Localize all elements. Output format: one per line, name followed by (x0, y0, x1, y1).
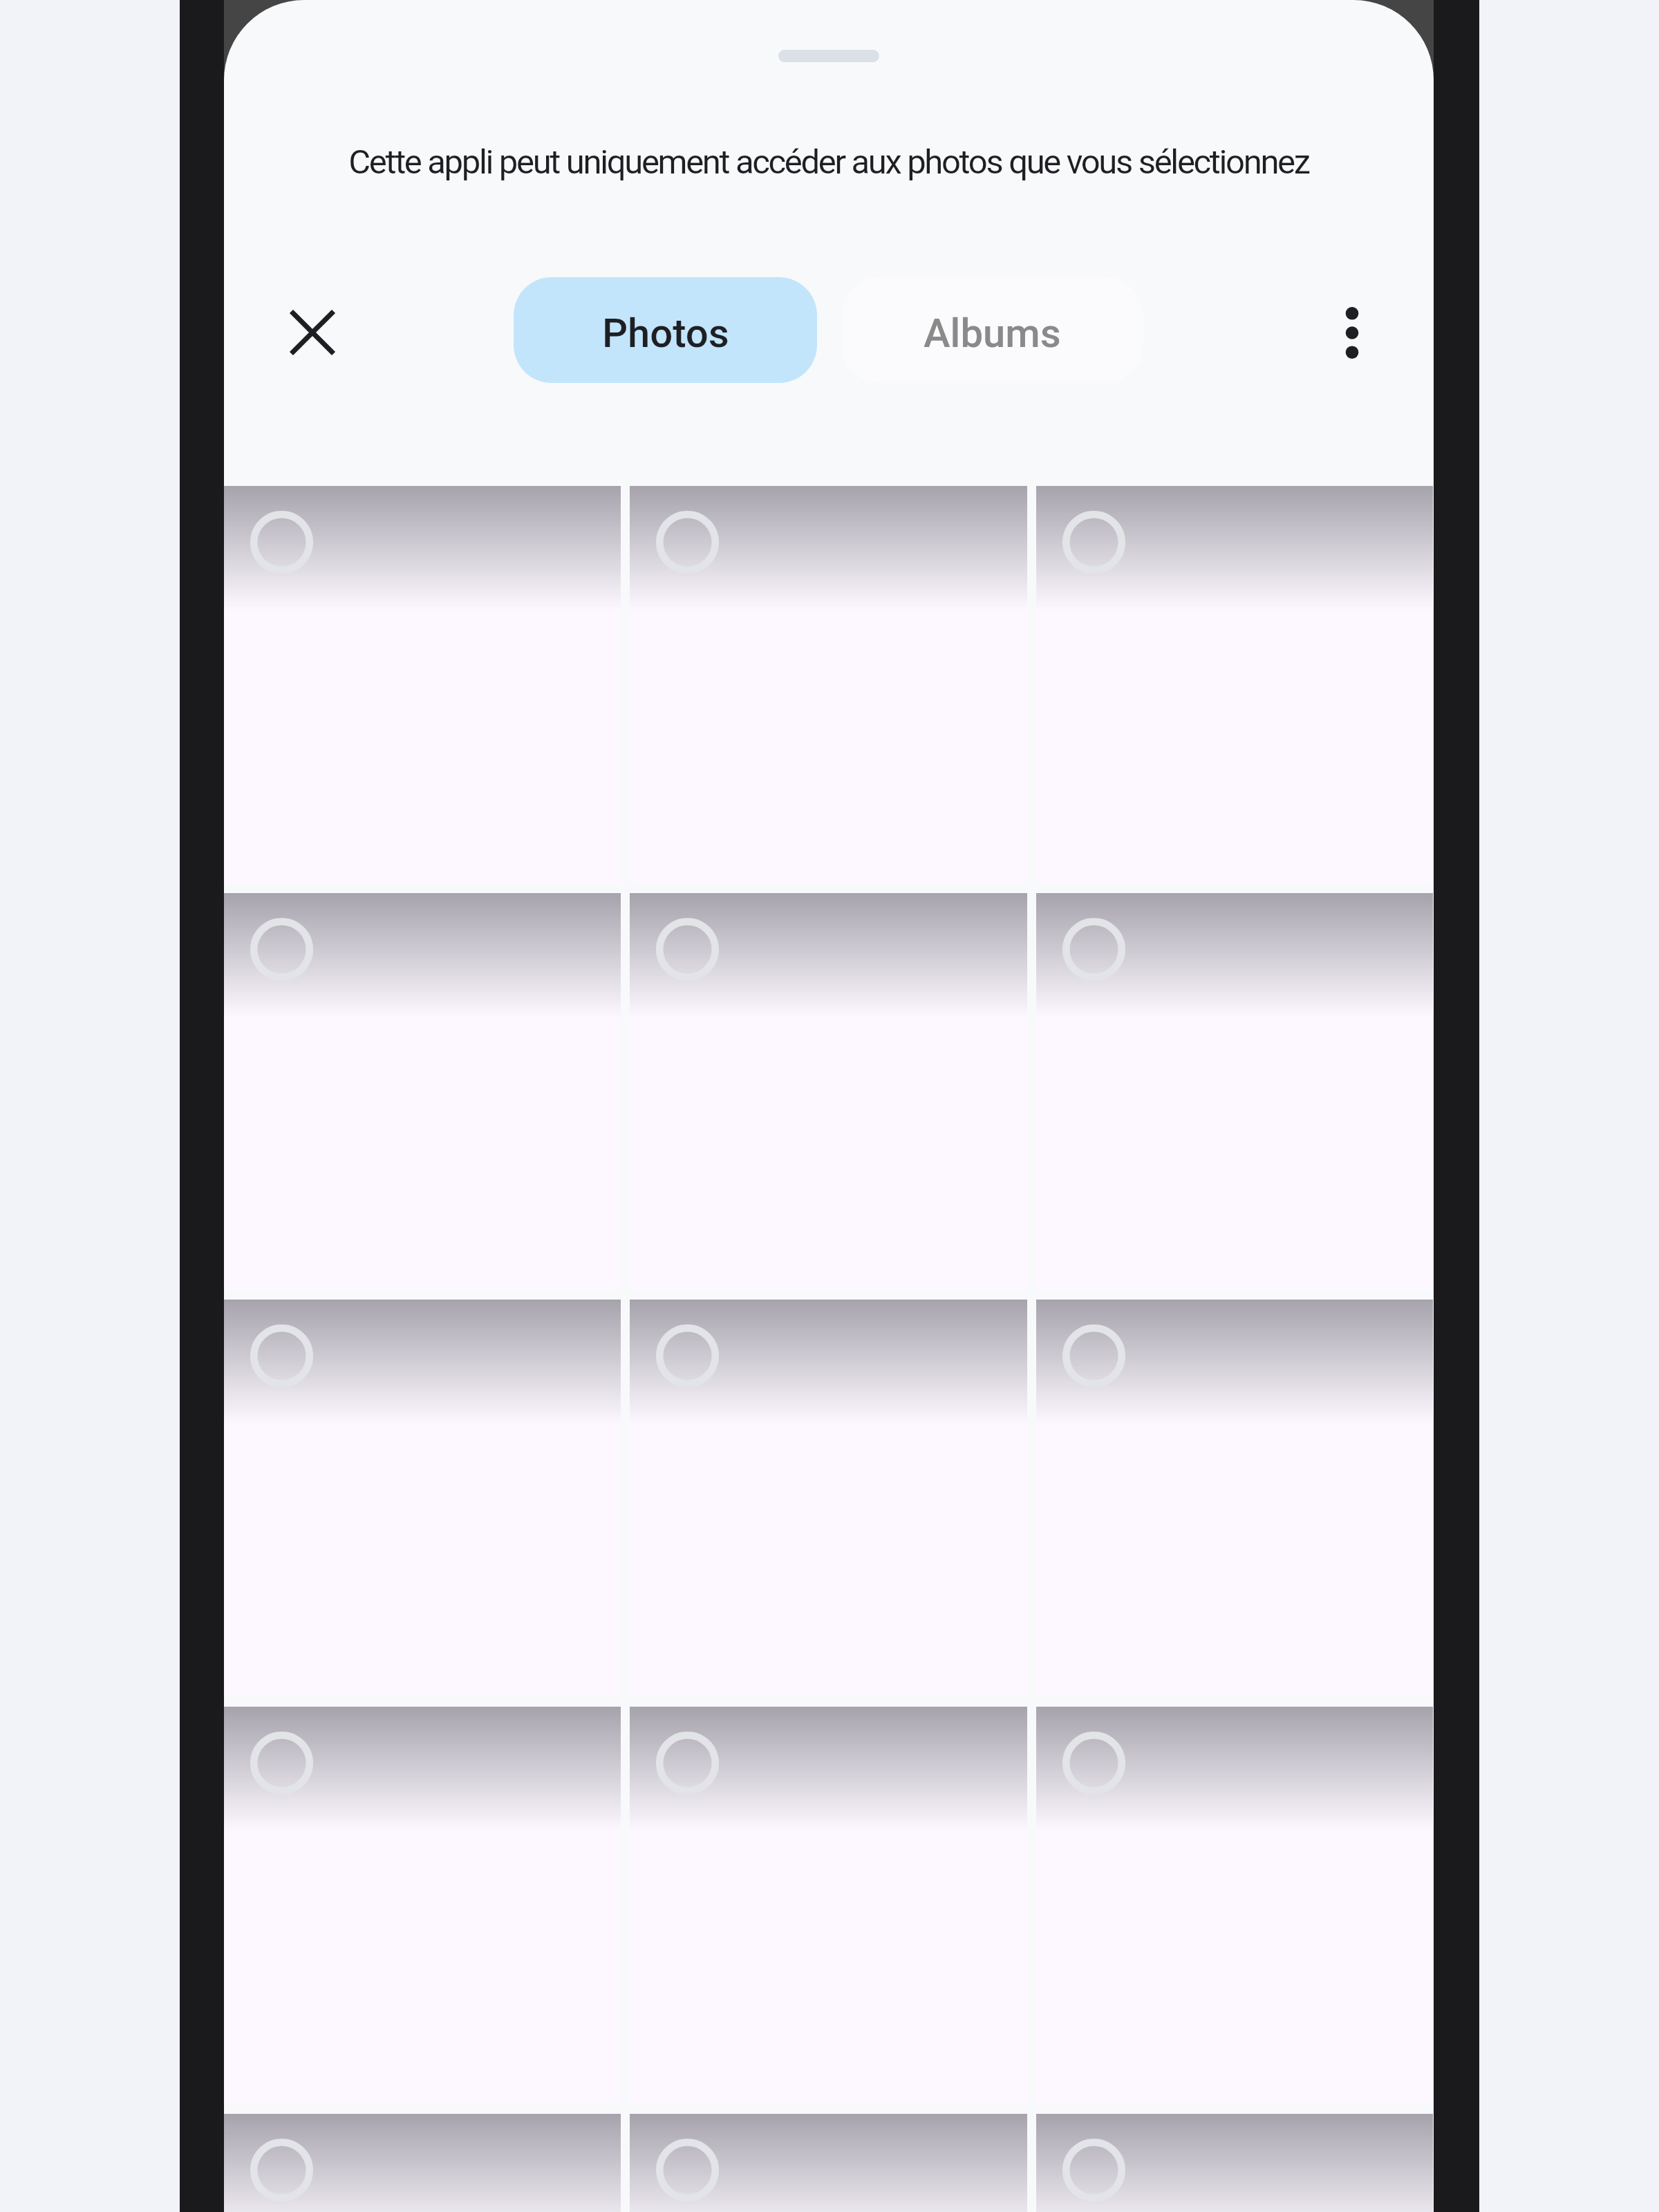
button[interactable]: Photo (224, 1300, 621, 1696)
button[interactable]: Photo (1036, 1300, 1433, 1696)
button[interactable]: Albums (841, 277, 1143, 383)
button[interactable]: Photo (630, 893, 1027, 1290)
button[interactable]: Photo (1036, 1707, 1433, 2103)
button[interactable]: More options (1313, 294, 1391, 371)
button[interactable]: Photo (224, 486, 621, 883)
button[interactable]: Photos (514, 277, 817, 383)
button[interactable]: Photo (1036, 486, 1433, 883)
button[interactable]: Photo (1036, 2114, 1433, 2212)
button[interactable]: Photo (630, 486, 1027, 883)
button[interactable]: Close (274, 294, 351, 371)
button[interactable]: Photo (1036, 893, 1433, 1290)
button[interactable]: Photo (224, 893, 621, 1290)
staticText: Albums (924, 310, 1061, 357)
button[interactable]: Photo (630, 1707, 1027, 2103)
staticText: Photos (602, 310, 729, 357)
button[interactable]: Photo (224, 2114, 621, 2212)
button[interactable]: Photo (224, 1707, 621, 2103)
staticText: Cette appli peut uniquement accéder aux … (224, 142, 1434, 182)
button[interactable]: Photo (630, 2114, 1027, 2212)
button[interactable]: Photo (630, 1300, 1027, 1696)
